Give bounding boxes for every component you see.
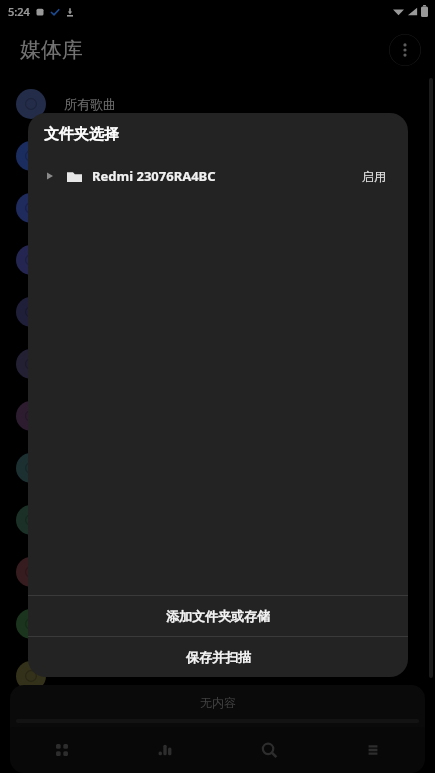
staticText: 媒体库 xyxy=(20,37,83,63)
staticText: Redmi 23076RA4BC xyxy=(92,167,216,185)
button[interactable] xyxy=(0,702,435,754)
staticText: 文件夹选择 xyxy=(44,125,119,144)
button[interactable]: 保存并扫描 xyxy=(28,637,408,677)
button[interactable] xyxy=(0,338,435,390)
button[interactable]: Search xyxy=(217,727,321,773)
staticText: 所有歌曲 xyxy=(64,96,116,112)
button[interactable] xyxy=(0,234,435,286)
button[interactable] xyxy=(0,390,435,442)
button[interactable]: Menu xyxy=(321,727,425,773)
staticText: 添加文件夹或存储 xyxy=(166,608,270,624)
button[interactable] xyxy=(0,130,435,182)
button[interactable] xyxy=(0,494,435,546)
button[interactable]: Library grid xyxy=(10,727,113,773)
button[interactable]: 所有歌曲 xyxy=(0,78,435,130)
button[interactable] xyxy=(0,182,435,234)
button[interactable]: More options xyxy=(389,34,421,66)
button[interactable] xyxy=(0,650,435,702)
button[interactable] xyxy=(0,286,435,338)
staticText: 无内容 xyxy=(200,695,236,710)
button[interactable]: 无内容 xyxy=(10,685,425,727)
button[interactable]: 启用 xyxy=(354,165,394,188)
button[interactable] xyxy=(0,598,435,650)
button[interactable]: 添加文件夹或存储 xyxy=(28,596,408,636)
staticText: 启用 xyxy=(362,169,386,184)
button[interactable] xyxy=(0,442,435,494)
button[interactable]: Now playing xyxy=(113,727,217,773)
button[interactable]: Redmi 23076RA4BC xyxy=(28,160,408,192)
button[interactable] xyxy=(0,546,435,598)
staticText: 保存并扫描 xyxy=(186,649,251,665)
staticText: 5:24 xyxy=(8,4,30,19)
